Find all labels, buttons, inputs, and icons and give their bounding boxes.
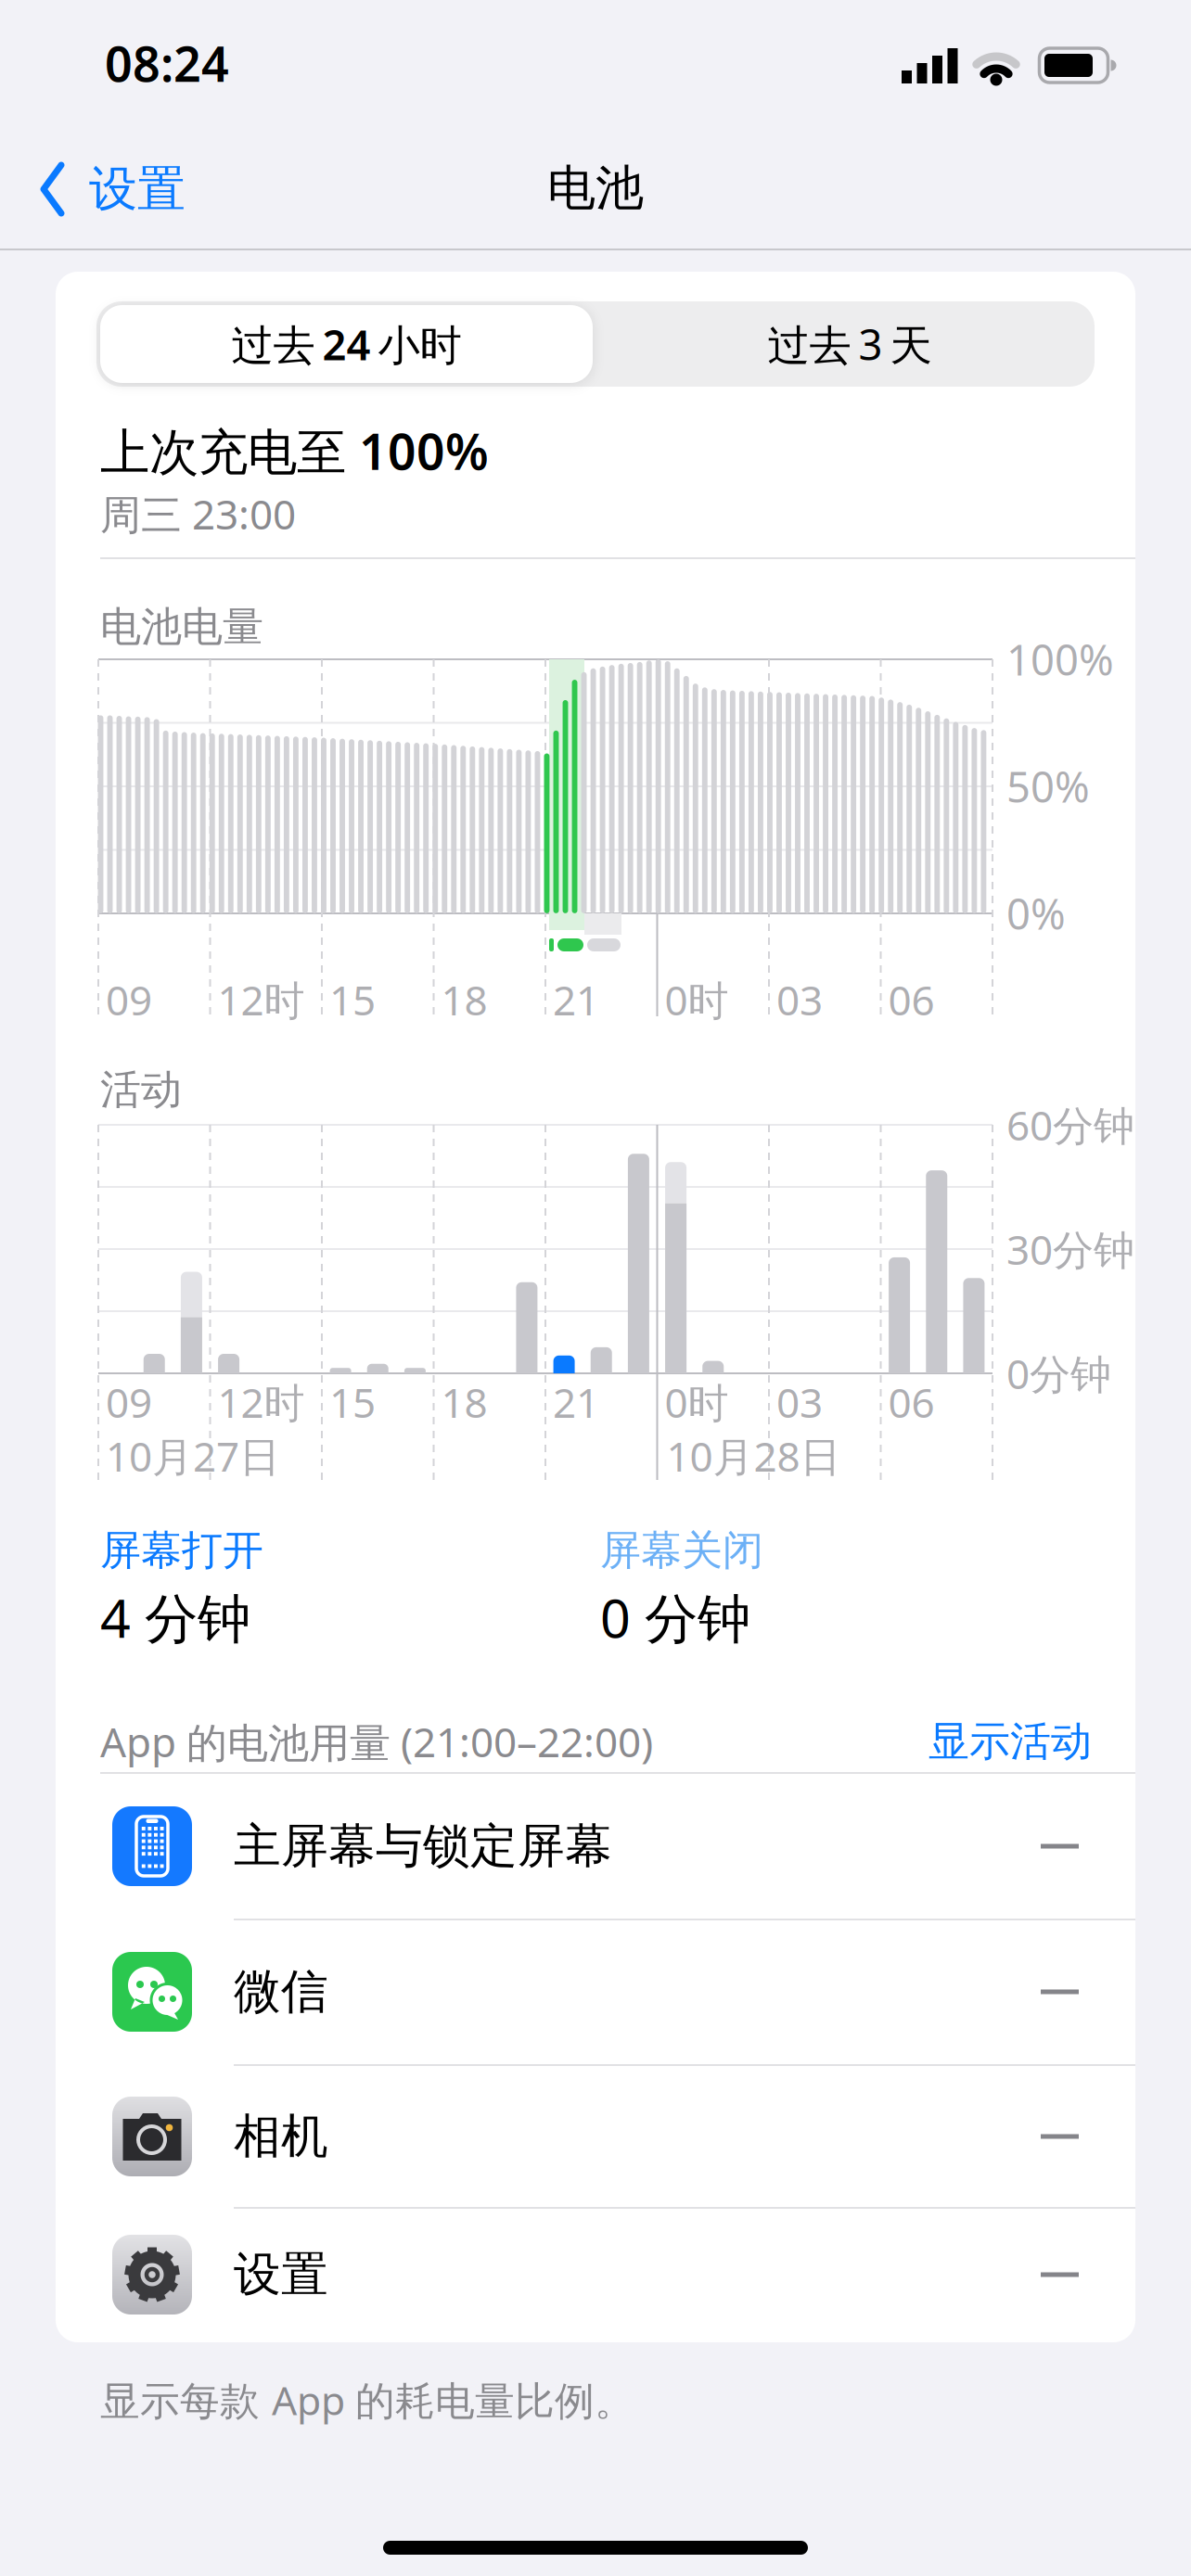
staticText: 06: [888, 973, 935, 1027]
staticText: 显示活动: [928, 1716, 1092, 1766]
staticText: App 的电池用量 (21:00–22:00): [100, 1714, 653, 1769]
staticText: 10月27日: [106, 1429, 280, 1483]
staticText: 0分钟: [1006, 1346, 1111, 1400]
staticText: 0%: [1006, 885, 1066, 941]
staticText: 08:24: [105, 31, 229, 95]
staticText: 21: [553, 1375, 599, 1429]
staticText: 18: [441, 1375, 487, 1429]
staticText: 0时: [665, 973, 729, 1027]
staticText: 0时: [665, 1375, 729, 1429]
staticText: 相机: [234, 2108, 328, 2165]
staticText: 60分钟: [1006, 1098, 1134, 1152]
staticText: 微信: [234, 1963, 328, 2021]
staticText: 50%: [1006, 758, 1090, 814]
staticText: 设置: [234, 2246, 328, 2303]
staticText: 09: [106, 973, 152, 1027]
staticText: 06: [888, 1375, 935, 1429]
staticText: 设置: [89, 160, 186, 219]
staticText: 15: [329, 1375, 376, 1429]
staticText: 21: [553, 973, 599, 1027]
staticText: 03: [776, 1375, 823, 1429]
staticText: 电池: [547, 159, 644, 218]
button[interactable]: 相机: [56, 2066, 1135, 2207]
staticText: 显示每款 App 的耗电量比例。: [100, 2374, 634, 2426]
staticText: 屏幕打开: [100, 1525, 263, 1575]
staticText: 0 分钟: [600, 1582, 750, 1652]
staticText: 过去 24 小时: [231, 316, 461, 372]
staticText: 03: [776, 973, 823, 1027]
staticText: 18: [441, 973, 487, 1027]
staticText: 12时: [218, 973, 305, 1027]
staticText: 屏幕关闭: [600, 1525, 763, 1575]
staticText: 周三 23:00: [100, 487, 296, 541]
staticText: 活动: [100, 1065, 182, 1115]
staticText: 上次充电至 100%: [100, 418, 489, 483]
button[interactable]: 返回设置: [41, 147, 263, 231]
staticText: 30分钟: [1006, 1222, 1134, 1276]
staticText: 09: [106, 1375, 152, 1429]
button[interactable]: 微信: [56, 1921, 1135, 2062]
staticText: 100%: [1006, 631, 1114, 687]
staticText: 12时: [218, 1375, 305, 1429]
button[interactable]: 显示活动: [813, 1704, 1092, 1779]
staticText: 主屏幕与锁定屏幕: [234, 1817, 612, 1875]
button[interactable]: 过去 3 天: [608, 305, 1091, 383]
button[interactable]: 主屏幕与锁定屏幕: [56, 1776, 1135, 1917]
staticText: 15: [329, 973, 376, 1027]
button[interactable]: 过去 24 小时: [100, 305, 593, 383]
staticText: 4 分钟: [100, 1582, 250, 1652]
staticText: 10月28日: [666, 1429, 841, 1483]
staticText: 电池电量: [100, 602, 263, 652]
button[interactable]: 设置: [56, 2204, 1135, 2345]
staticText: 过去 3 天: [768, 316, 932, 372]
